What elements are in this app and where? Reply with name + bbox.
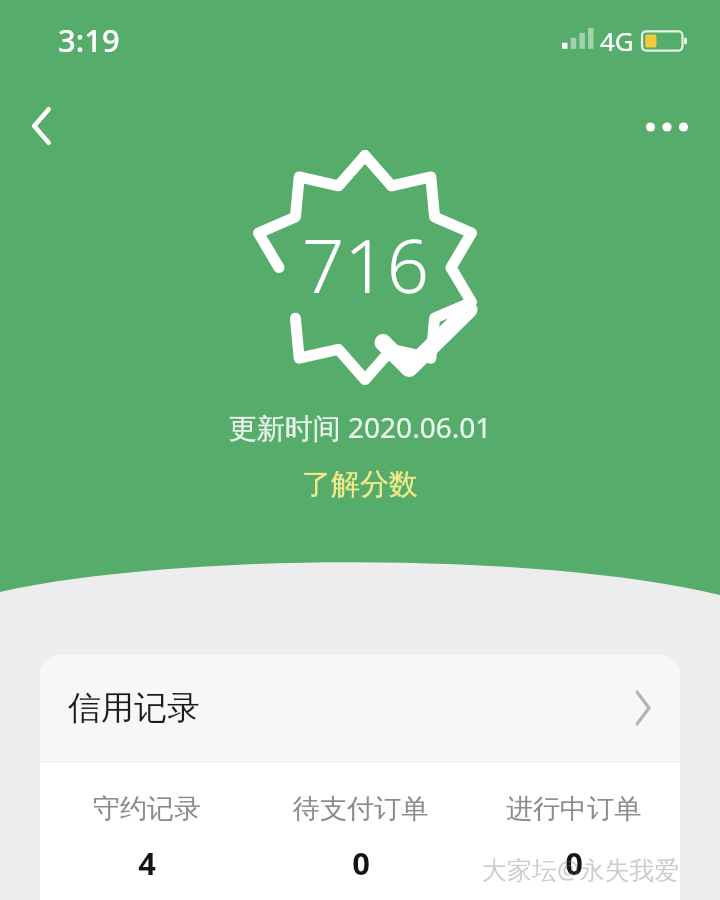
staticText: 4G bbox=[600, 23, 634, 58]
button[interactable]: Back bbox=[14, 98, 70, 154]
staticText: 守约记录 bbox=[93, 792, 201, 826]
staticText: 进行中订单 bbox=[506, 792, 641, 826]
staticText: 716 bbox=[302, 214, 429, 315]
staticText: 信用记录 bbox=[68, 687, 632, 729]
button[interactable]: 了解分数 bbox=[292, 462, 428, 507]
button[interactable]: 守约记录 bbox=[40, 792, 254, 884]
staticText: 大家坛@永失我爱 bbox=[482, 852, 680, 886]
button[interactable]: 信用记录 bbox=[40, 655, 680, 761]
button[interactable]: More options bbox=[638, 100, 696, 154]
staticText: 4 bbox=[138, 842, 156, 884]
button[interactable]: 进行中订单 bbox=[467, 792, 680, 884]
staticText: 更新时间 2020.06.01 bbox=[0, 408, 720, 446]
staticText: 了解分数 bbox=[302, 466, 418, 503]
staticText: 0 bbox=[352, 842, 370, 884]
staticText: 3:19 bbox=[58, 19, 120, 61]
staticText: 待支付订单 bbox=[293, 792, 428, 826]
button[interactable]: 待支付订单 bbox=[254, 792, 467, 884]
staticText: 0 bbox=[565, 842, 583, 884]
